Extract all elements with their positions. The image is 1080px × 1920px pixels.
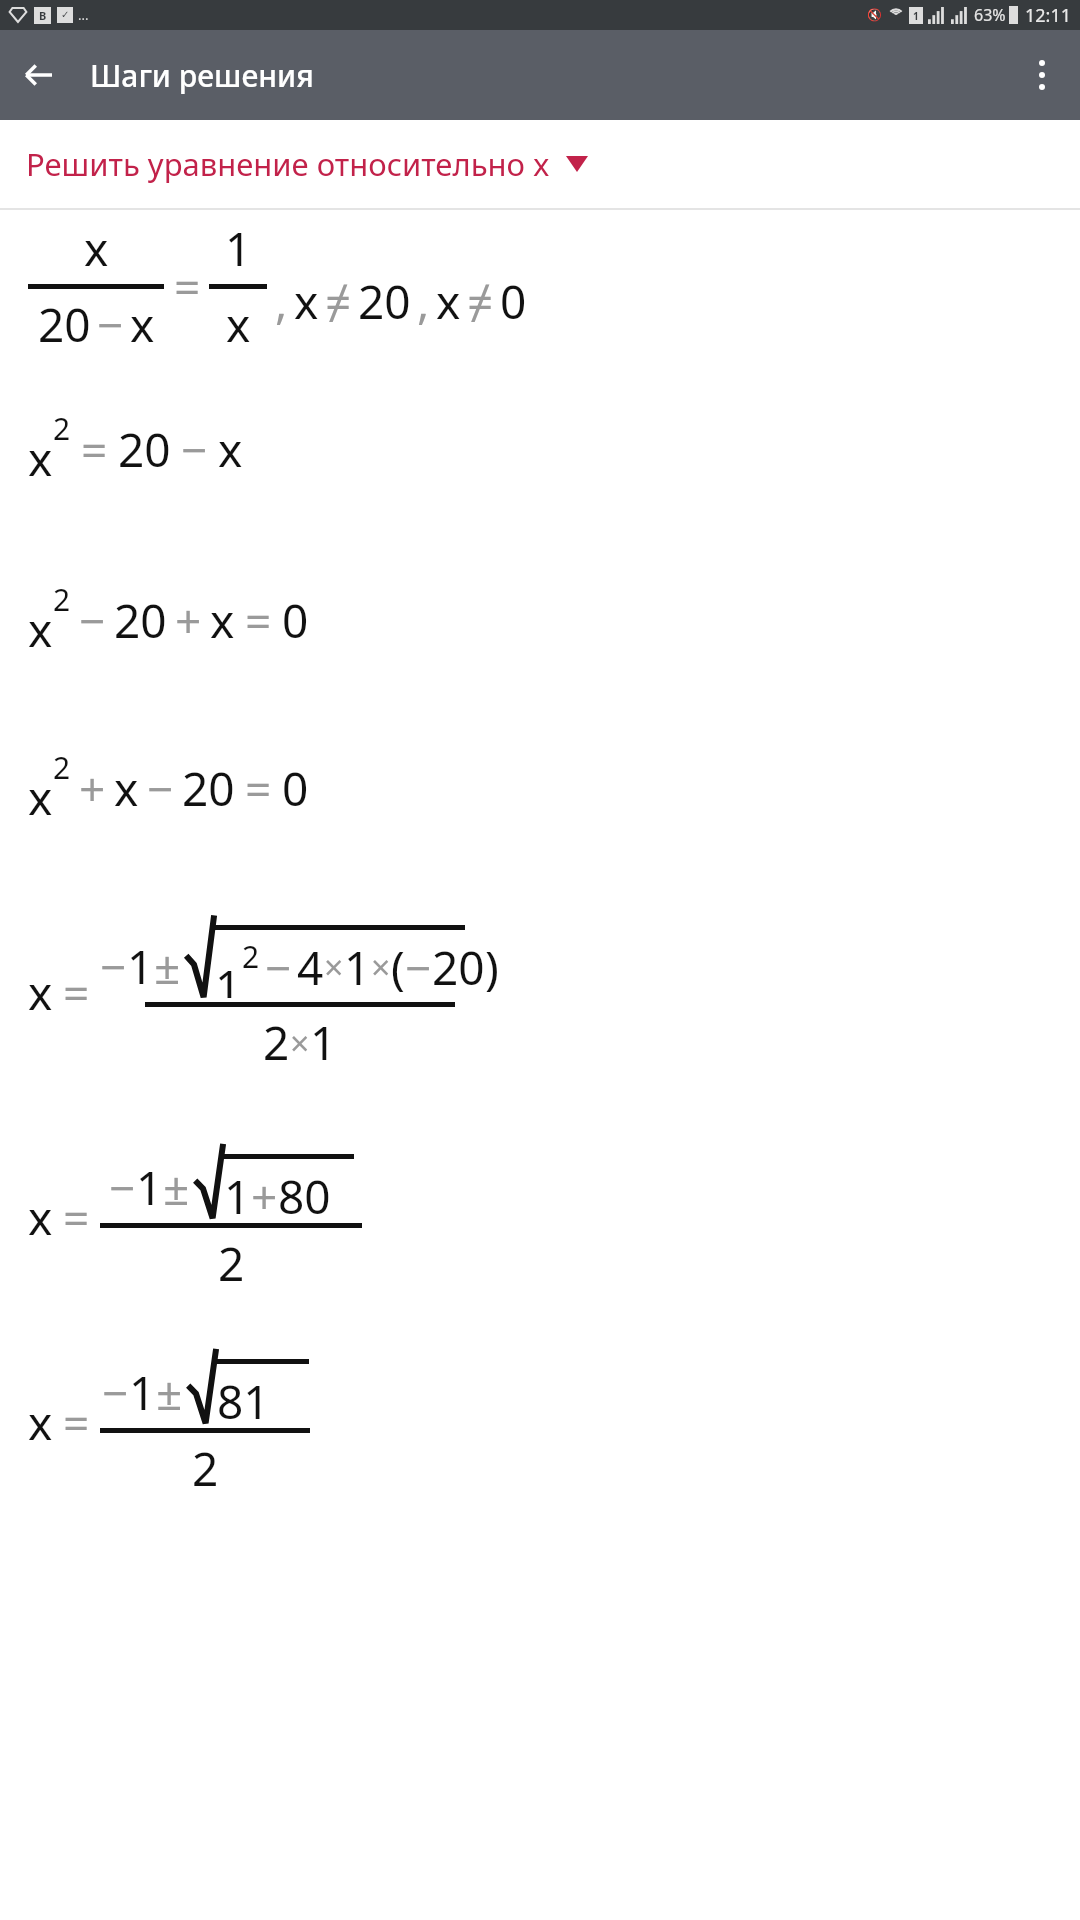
staticText: − xyxy=(109,1156,136,1219)
staticText: − xyxy=(147,757,174,820)
staticText: x xyxy=(28,961,53,1024)
staticText: B xyxy=(39,8,47,23)
staticText: x xyxy=(28,1186,53,1249)
staticText: ) xyxy=(485,936,499,998)
staticText: − xyxy=(97,293,124,356)
staticText: 20 xyxy=(38,293,91,356)
staticText: 20 xyxy=(118,418,171,481)
staticText: × xyxy=(371,944,391,990)
staticText: = xyxy=(63,1186,90,1249)
staticText: = xyxy=(81,418,108,481)
staticText: ( xyxy=(391,936,405,998)
staticText: 4 xyxy=(297,936,324,998)
staticText: x xyxy=(294,270,319,333)
staticText: 1 xyxy=(127,935,154,998)
staticText: Шаги решения xyxy=(90,55,314,96)
staticText: 2 xyxy=(242,936,260,977)
staticText: − xyxy=(405,936,432,998)
staticText: ... xyxy=(78,6,89,24)
staticText: 80 xyxy=(278,1165,331,1219)
staticText: + xyxy=(175,589,202,652)
staticText: 20 xyxy=(432,936,485,998)
staticText: ± xyxy=(154,935,181,998)
staticText: = xyxy=(63,1391,90,1454)
staticText: 2 xyxy=(53,408,71,449)
staticText: x xyxy=(210,589,235,652)
staticText: 20 xyxy=(182,757,235,820)
staticText: ≠ xyxy=(325,270,352,333)
staticText: 1 xyxy=(344,936,371,998)
staticText: x xyxy=(436,270,461,333)
staticText: x xyxy=(28,1391,53,1454)
staticText: ± xyxy=(156,1361,183,1424)
staticText: ✓ xyxy=(61,9,70,21)
staticText: x xyxy=(114,757,139,820)
staticText: x xyxy=(84,217,109,280)
staticText: = xyxy=(245,589,272,652)
staticText: − xyxy=(79,589,106,652)
staticText: − xyxy=(265,936,292,998)
staticText: 1 xyxy=(129,1361,156,1424)
staticText: x xyxy=(130,293,155,356)
staticText: x xyxy=(28,766,53,829)
staticText: x xyxy=(218,418,243,481)
staticText: 1 xyxy=(225,217,252,280)
staticText: 1 xyxy=(913,9,919,23)
button[interactable]: Back xyxy=(14,51,62,99)
staticText: 2 xyxy=(53,747,71,788)
staticText: 12:11 xyxy=(1025,3,1072,28)
staticText: 2 xyxy=(218,1232,245,1295)
staticText: 2 xyxy=(53,579,71,620)
staticText: 1 xyxy=(215,955,242,998)
staticText: − xyxy=(102,1361,129,1424)
staticText: 2 xyxy=(192,1437,219,1500)
staticText: x xyxy=(226,293,251,356)
staticText: , xyxy=(275,270,288,333)
staticText: × xyxy=(324,944,344,990)
staticText: ≠ xyxy=(467,270,494,333)
staticText: = xyxy=(174,255,201,318)
staticText: 0 xyxy=(282,589,309,652)
staticText: 2 xyxy=(263,1011,290,1074)
staticText: − xyxy=(100,935,127,998)
staticText: 63% xyxy=(974,4,1006,26)
staticText: ± xyxy=(163,1156,190,1219)
staticText: + xyxy=(251,1165,278,1219)
staticText: 1 xyxy=(136,1156,163,1219)
staticText: 1 xyxy=(310,1011,337,1074)
staticText: 20 xyxy=(358,270,411,333)
staticText: = xyxy=(63,961,90,1024)
staticText: 20 xyxy=(114,589,167,652)
staticText: = xyxy=(245,757,272,820)
staticText: 0 xyxy=(282,757,309,820)
staticText: + xyxy=(79,757,106,820)
staticText: 0 xyxy=(500,270,527,333)
staticText: , xyxy=(417,270,430,333)
staticText: × xyxy=(290,1020,310,1066)
staticText: x xyxy=(28,598,53,661)
staticText: 1 xyxy=(224,1165,251,1219)
staticText: x xyxy=(28,427,53,490)
staticText: − xyxy=(181,418,208,481)
button[interactable]: Решить уравнение относительно x xyxy=(0,120,1080,208)
staticText: 🔇 xyxy=(867,8,882,22)
button[interactable]: More options xyxy=(1018,51,1066,99)
staticText: 81 xyxy=(217,1370,270,1424)
staticText: Решить уравнение относительно x xyxy=(26,143,550,185)
